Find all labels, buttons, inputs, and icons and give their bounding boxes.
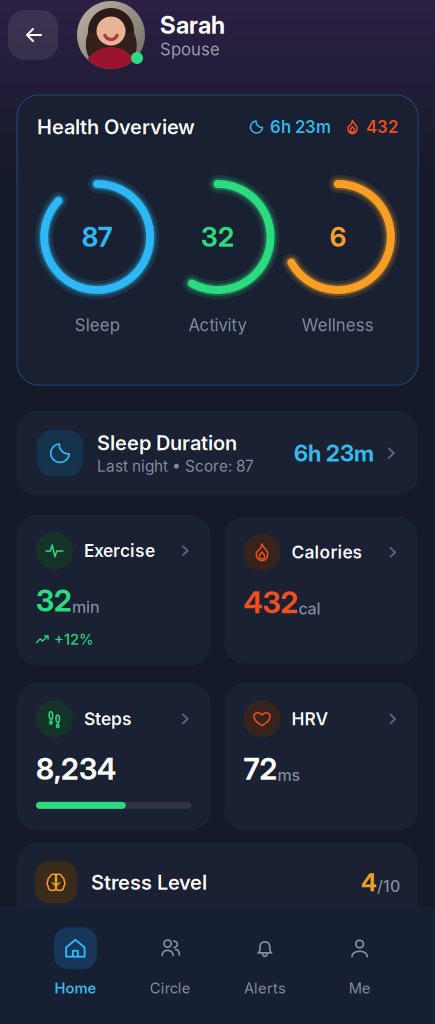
staticText: 72: [243, 751, 277, 787]
staticText: Circle: [150, 979, 191, 997]
staticText: 432: [243, 585, 298, 620]
staticText: 6h 23m: [270, 117, 331, 137]
staticText: Last night • Score: 87: [97, 457, 254, 476]
staticText: Health Overview: [37, 115, 195, 139]
staticText: ms: [277, 765, 300, 785]
staticText: Activity: [188, 315, 246, 335]
staticText: Steps: [84, 708, 132, 729]
button[interactable]: Steps: [17, 683, 210, 830]
staticText: Wellness: [302, 315, 374, 335]
staticText: 6h 23m: [294, 439, 374, 467]
staticText: Sleep: [75, 315, 120, 335]
staticText: +12%: [54, 631, 94, 648]
button[interactable]: Sleep Duration: [17, 411, 418, 495]
button[interactable]: Me: [312, 927, 407, 997]
staticText: 8,234: [36, 751, 116, 787]
button[interactable]: Back: [8, 10, 58, 60]
staticText: 432: [366, 117, 398, 137]
staticText: 6: [330, 221, 346, 253]
staticText: /10: [377, 877, 400, 896]
button[interactable]: Calories: [224, 517, 418, 664]
button[interactable]: Stress Level: [17, 843, 418, 945]
staticText: Alerts: [244, 979, 286, 997]
button[interactable]: Home: [28, 927, 123, 997]
staticText: min: [72, 597, 100, 617]
button[interactable]: Circle: [123, 927, 218, 997]
staticText: Sleep Duration: [97, 431, 237, 455]
button[interactable]: HRV: [224, 683, 418, 830]
staticText: Home: [54, 979, 96, 997]
staticText: 87: [82, 221, 113, 253]
button[interactable]: Exercise: [17, 515, 210, 665]
staticText: 4: [361, 868, 377, 897]
staticText: Spouse: [160, 39, 220, 60]
staticText: cal: [298, 599, 320, 618]
staticText: Me: [349, 979, 371, 997]
staticText: 32: [36, 583, 72, 619]
staticText: Exercise: [84, 540, 155, 561]
staticText: Sarah: [160, 10, 225, 39]
button[interactable]: Alerts: [217, 927, 312, 997]
staticText: Stress Level: [91, 870, 207, 894]
staticText: HRV: [291, 708, 328, 729]
staticText: Calories: [291, 542, 362, 563]
staticText: 32: [201, 221, 234, 253]
